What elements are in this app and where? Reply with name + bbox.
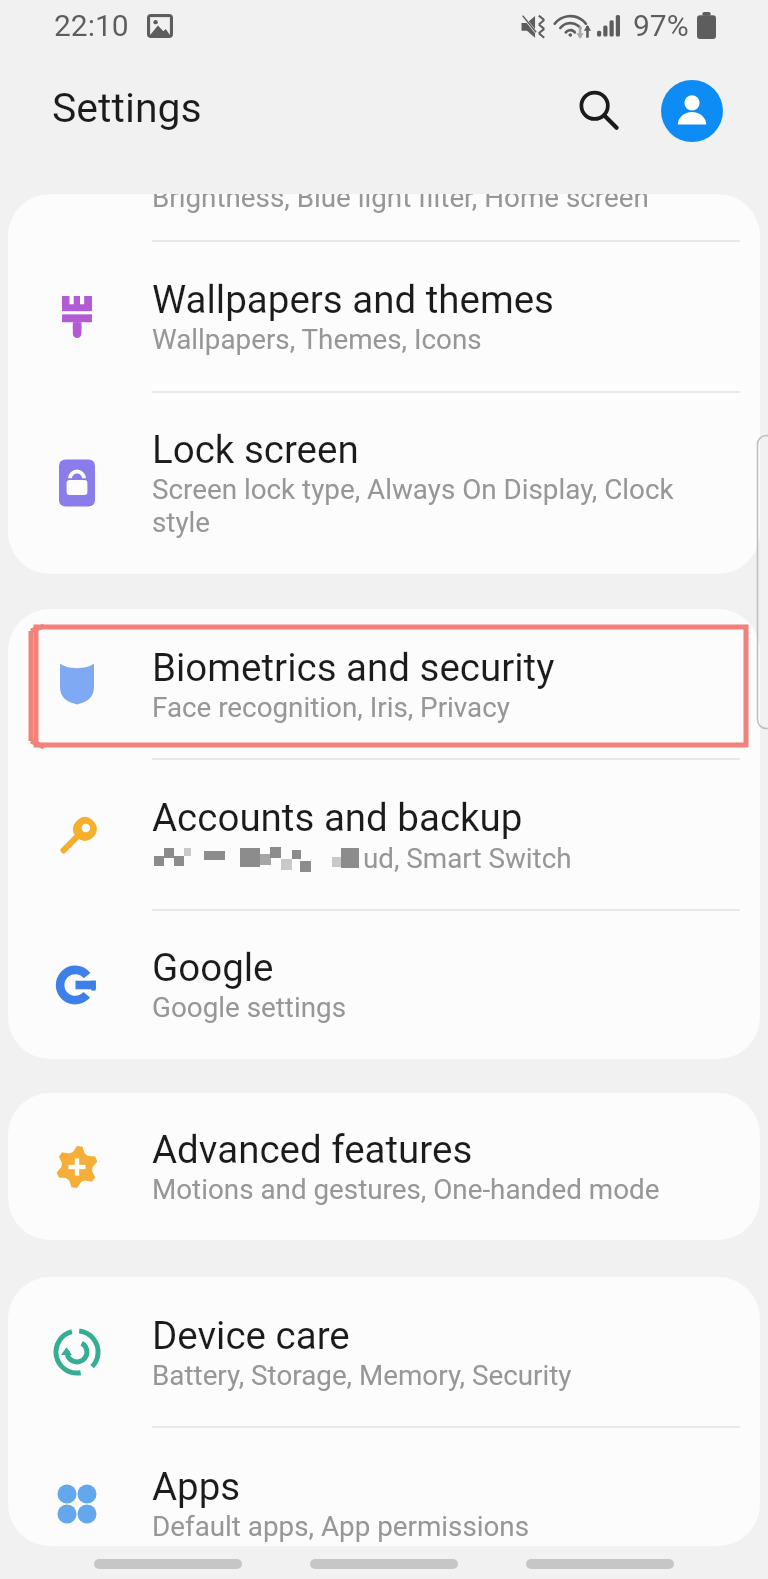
staticText: Advanced features [152, 1127, 473, 1172]
staticText: Face recognition, Iris, Privacy [152, 691, 510, 724]
button[interactable]: Device care [8, 1277, 760, 1427]
staticText: Biometrics and security [152, 645, 555, 690]
button[interactable]: Search [568, 80, 630, 142]
staticText: 22:10 [54, 8, 129, 43]
staticText: Lock screen [152, 427, 359, 472]
staticText: Apps [152, 1464, 241, 1509]
staticText: Wallpapers and themes [152, 277, 554, 322]
button[interactable]: Google [8, 910, 760, 1059]
staticText: Wallpapers, Themes, Icons [152, 323, 482, 356]
staticText: 97% [633, 8, 689, 43]
staticText: Google [152, 945, 274, 990]
button[interactable]: Account [661, 80, 723, 142]
staticText: style [152, 506, 211, 539]
button[interactable]: Wallpapers and themes [8, 241, 760, 392]
staticText: ud, Smart Switch [363, 842, 572, 875]
staticText: Google settings [152, 991, 346, 1024]
button[interactable]: Accounts and backup [8, 759, 760, 910]
button[interactable]: Apps [8, 1444, 760, 1546]
staticText: Default apps, App permissions [152, 1510, 530, 1543]
button[interactable]: Advanced features [8, 1093, 760, 1240]
button[interactable]: Back [526, 1559, 674, 1569]
staticText: Battery, Storage, Memory, Security [152, 1359, 572, 1392]
staticText: Accounts and backup [152, 795, 523, 840]
staticText: Settings [52, 84, 202, 132]
staticText: Brightness, Blue light filter, Home scre… [152, 194, 649, 214]
staticText: Screen lock type, Always On Display, Clo… [152, 473, 674, 506]
button[interactable]: Recents [94, 1559, 242, 1569]
staticText: Device care [152, 1313, 350, 1358]
staticText: Motions and gestures, One-handed mode [152, 1173, 660, 1206]
button[interactable]: Biometrics and security [8, 609, 760, 759]
button[interactable]: Home [310, 1559, 458, 1569]
button[interactable]: Lock screen [8, 392, 760, 574]
